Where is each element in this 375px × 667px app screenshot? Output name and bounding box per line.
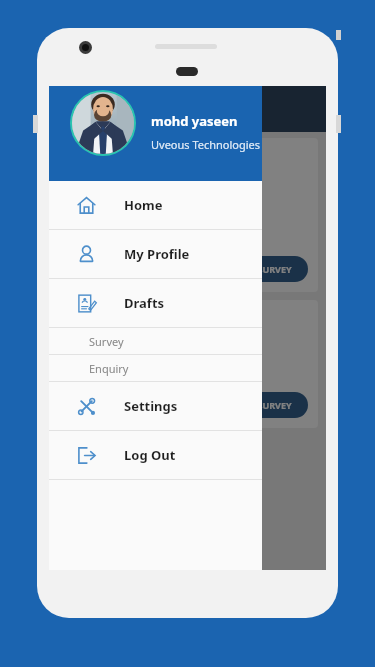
button[interactable]: Home [49, 181, 262, 229]
staticText: Log Out [124, 446, 176, 464]
staticText: Plot 21, Palm Beach Expressway Sector 15… [67, 185, 202, 236]
other: Drafts [77, 294, 96, 313]
staticText: Survey [89, 334, 124, 349]
staticText: Settings [124, 397, 178, 415]
staticText: Created On : [67, 310, 123, 322]
staticText: Created On : [67, 148, 123, 160]
button[interactable]: COMPLETE SURVEY [192, 392, 308, 418]
other: Settings [77, 397, 96, 416]
other: My Profile [77, 245, 96, 264]
staticText: Enquiry [89, 361, 129, 376]
button[interactable]: Enquiry [49, 355, 262, 381]
other: Log Out [77, 446, 96, 465]
staticText: My Profile [124, 245, 190, 263]
staticText: Andheri East, Mumbai, Maharashtra, India [67, 347, 163, 372]
button[interactable]: Log Out [49, 431, 262, 479]
staticText: COMPLETE SURVEY [208, 263, 292, 275]
button[interactable]: Drafts [49, 279, 262, 327]
button[interactable]: COMPLETE SURVEY [192, 256, 308, 282]
staticText: mohd yaseen [151, 112, 238, 130]
staticText: Home [124, 196, 163, 214]
staticText: Drafts [124, 294, 165, 312]
staticText: Modified On : [67, 325, 127, 337]
button[interactable]: Settings [49, 382, 262, 430]
other: Home [77, 196, 96, 215]
staticText: 29-11-2019 [127, 325, 174, 337]
staticText: COMPLETE SURVEY [208, 399, 292, 411]
button[interactable]: Survey [49, 328, 262, 354]
staticText: 06-12-2019 [123, 148, 170, 160]
button[interactable]: My Profile [49, 230, 262, 278]
staticText: Uveous Technologies [151, 137, 261, 152]
